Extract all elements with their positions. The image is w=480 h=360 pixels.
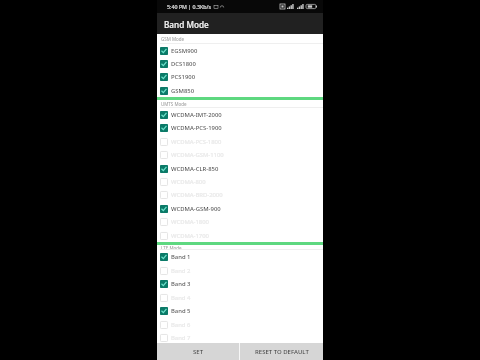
staticText: UMTS Mode	[161, 101, 187, 107]
staticText: RESET TO DEFAULT	[255, 348, 309, 356]
staticText: WCDMA-BRD-2000	[171, 191, 223, 199]
staticText: Band 1	[171, 253, 191, 261]
staticText: PCS1900	[171, 73, 196, 81]
other: SIM card	[280, 4, 285, 9]
button[interactable]: WCDMA-800	[157, 175, 323, 188]
button[interactable]: Band 6	[157, 318, 323, 331]
staticText: Band 6	[171, 321, 191, 329]
staticText: Band 5	[171, 307, 191, 315]
button[interactable]: Band 4	[157, 291, 323, 304]
staticText: 5:40 PM | 0.3Kb/s	[167, 3, 212, 10]
staticText: WCDMA-1700	[171, 232, 209, 240]
button[interactable]: Band 3	[157, 277, 323, 291]
button[interactable]: RESET TO DEFAULT	[240, 343, 323, 360]
button[interactable]: PCS1900	[157, 70, 323, 84]
staticText: WCDMA-IMT-2000	[171, 111, 222, 119]
staticText: SET	[193, 348, 204, 356]
button[interactable]: WCDMA-PCS-1900	[157, 121, 323, 135]
button[interactable]: GSM850	[157, 84, 323, 97]
button[interactable]: WCDMA-1700	[157, 229, 323, 242]
button[interactable]: Band 5	[157, 304, 323, 318]
staticText: WCDMA-GSM-1100	[171, 151, 224, 159]
other: Battery	[306, 4, 317, 9]
button[interactable]: EGSM900	[157, 44, 323, 57]
staticText: GSM Mode	[161, 36, 185, 42]
button[interactable]: WCDMA-CLR-850	[157, 162, 323, 175]
button[interactable]: Band 7	[157, 331, 323, 343]
button[interactable]: Band 1	[157, 250, 323, 264]
button[interactable]: WCDMA-GSM-900	[157, 202, 323, 215]
button[interactable]: WCDMA-IMT-2000	[157, 108, 323, 121]
staticText: WCDMA-CLR-850	[171, 165, 219, 173]
button[interactable]: WCDMA-1800	[157, 215, 323, 229]
staticText: EGSM900	[171, 47, 198, 55]
staticText: Band 2	[171, 267, 191, 275]
staticText: WCDMA-PCS-1800	[171, 138, 222, 146]
staticText: Band 7	[171, 334, 191, 342]
staticText: WCDMA-1800	[171, 218, 209, 226]
staticText: Band 3	[171, 280, 191, 288]
button[interactable]: WCDMA-PCS-1800	[157, 135, 323, 148]
staticText: GSM850	[171, 87, 195, 95]
staticText: LTE Mode	[161, 245, 182, 250]
staticText: WCDMA-PCS-1900	[171, 124, 222, 132]
button[interactable]: DCS1800	[157, 57, 323, 70]
button[interactable]: Band 2	[157, 264, 323, 277]
button[interactable]: SET	[157, 343, 239, 360]
staticText: Band Mode	[164, 19, 209, 30]
staticText: WCDMA-800	[171, 178, 206, 186]
staticText: WCDMA-GSM-900	[171, 205, 221, 213]
button[interactable]: WCDMA-GSM-1100	[157, 148, 323, 162]
staticText: Band 4	[171, 294, 191, 302]
button[interactable]: WCDMA-BRD-2000	[157, 188, 323, 202]
staticText: DCS1800	[171, 60, 196, 68]
